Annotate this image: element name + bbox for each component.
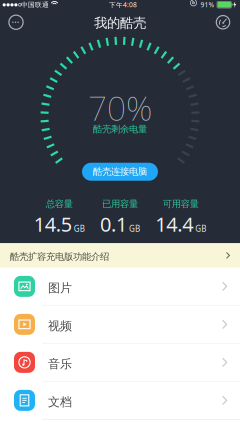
staticText: 文档 [48,395,72,409]
button[interactable]: 视频 [0,306,240,344]
staticText: 可用容量 [163,198,199,210]
staticText: 酷壳连接电脑 [93,166,147,177]
staticText: 已用容量 [102,198,138,210]
button[interactable]: 更多 [0,14,24,30]
staticText: 14.5 [34,211,72,237]
staticText: 0.1 [100,211,127,237]
staticText: 70% [88,86,152,130]
staticText: GB [74,223,85,234]
staticText: GB [129,223,140,234]
staticText: GB [195,223,206,234]
button[interactable]: 图片 [0,268,240,306]
staticText: 音乐 [48,357,72,371]
button[interactable]: 音乐 [0,344,240,382]
staticText: 下午4:08 [109,0,137,9]
staticText: 91% [200,0,214,9]
staticText: 酷壳扩容充电版功能介绍 [10,251,109,262]
staticText: 我的酷壳 [94,15,146,31]
staticText: 图片 [48,281,72,295]
button[interactable]: 酷壳连接电脑 [82,163,158,181]
staticText: 视频 [48,319,72,333]
button[interactable]: 酷壳扩容充电版功能介绍 [0,243,240,268]
button[interactable]: 文档 [0,382,240,420]
staticText: 14.4 [155,211,193,237]
staticText: 总容量 [46,198,73,210]
button[interactable]: 测速 [215,14,240,30]
staticText: 酷壳剩余电量 [93,123,147,135]
staticText: 中国联通 [21,1,49,9]
